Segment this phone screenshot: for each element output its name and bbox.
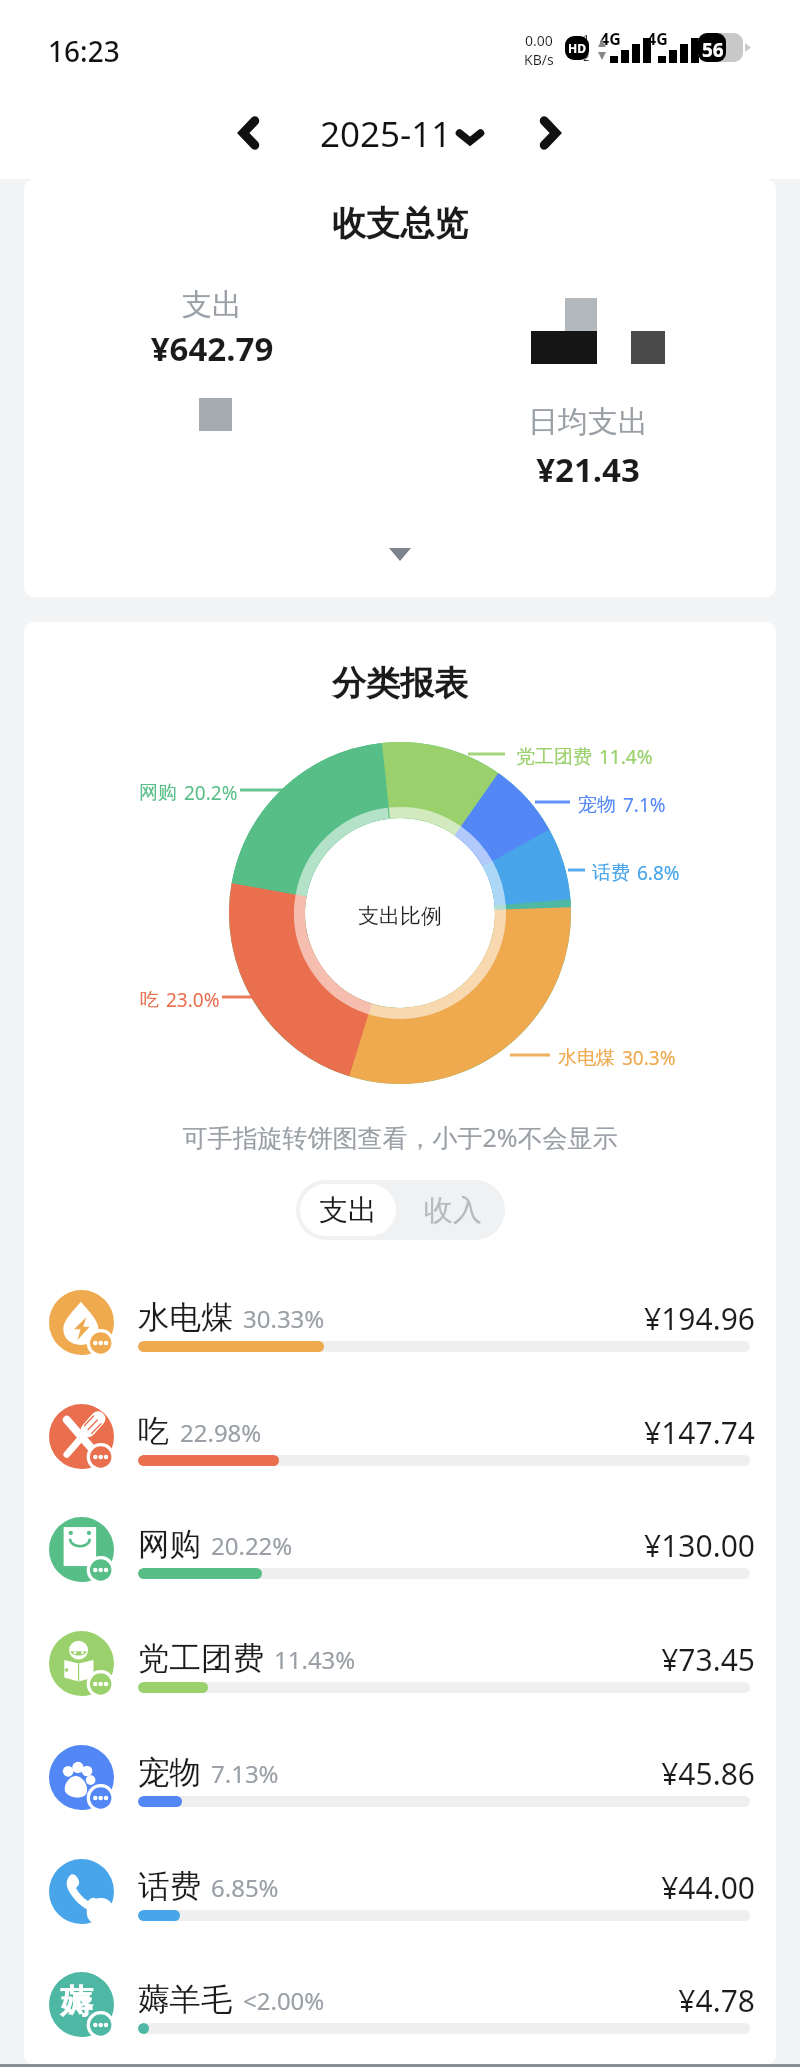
staticText: 支出 — [319, 1192, 377, 1229]
staticText: 11.4% — [599, 744, 653, 770]
staticText: 30.3% — [622, 1045, 676, 1071]
staticText: HD — [568, 40, 586, 56]
button[interactable]: 2025-11 — [320, 106, 482, 162]
button[interactable]: 支出 — [300, 1184, 396, 1236]
staticText: 6.85% — [211, 1871, 279, 1904]
staticText: 6.8% — [637, 860, 680, 886]
staticText: 30.33% — [243, 1302, 325, 1335]
staticText: 水电煤 — [138, 1298, 233, 1338]
staticText: ¥4.78 — [555, 1980, 755, 2021]
staticText: ¥147.74 — [555, 1412, 755, 1453]
staticText: 0.00 — [525, 31, 553, 50]
staticText: 11.43% — [274, 1643, 356, 1676]
staticText: 1 — [583, 31, 590, 46]
staticText: 4G — [647, 28, 668, 50]
button[interactable]: 话费 — [24, 1837, 776, 1947]
staticText: 7.13% — [211, 1757, 279, 1790]
staticText: 56 — [702, 37, 724, 63]
staticText: 吃 — [138, 1412, 170, 1452]
staticText: 23.0% — [166, 987, 220, 1013]
staticText: 日均支出 — [508, 403, 668, 441]
button[interactable]: 薅 — [24, 1950, 776, 2060]
staticText: 2025-11 — [320, 110, 452, 158]
staticText: ¥194.96 — [555, 1298, 755, 1339]
staticText: 20.22% — [211, 1529, 293, 1562]
staticText: 收支总览 — [24, 202, 776, 245]
staticText: 网购 — [139, 781, 177, 805]
staticText: ¥45.86 — [555, 1753, 755, 1794]
staticText: 宠物 — [138, 1753, 201, 1793]
button[interactable]: 水电煤 — [24, 1268, 776, 1378]
button[interactable]: 网购 — [24, 1495, 776, 1605]
staticText: <2.00% — [243, 1984, 325, 2017]
staticText: 薅 — [60, 1981, 93, 2023]
button[interactable]: Next month — [520, 103, 580, 163]
staticText: ¥44.00 — [555, 1867, 755, 1908]
staticText: 党工团费 — [516, 745, 592, 769]
staticText: 收入 — [424, 1192, 482, 1229]
staticText: 22.98% — [180, 1416, 262, 1449]
staticText: 分类报表 — [24, 662, 776, 705]
staticText: 网购 — [138, 1525, 201, 1565]
staticText: 吃 — [140, 988, 159, 1012]
button[interactable]: 收入 — [400, 1180, 505, 1240]
staticText: 7.1% — [623, 792, 666, 818]
button[interactable]: 收支总览 — [24, 179, 776, 597]
staticText: 2 — [583, 49, 590, 64]
staticText: 可手指旋转饼图查看，小于2%不会显示 — [24, 1120, 776, 1154]
staticText: 薅羊毛 — [138, 1980, 233, 2020]
staticText: ¥642.79 — [112, 326, 312, 371]
button[interactable]: 宠物 — [24, 1723, 776, 1833]
staticText: ¥130.00 — [555, 1525, 755, 1566]
staticText: ¥21.43 — [488, 447, 688, 492]
staticText: 党工团费 — [138, 1639, 264, 1679]
button[interactable]: Previous month — [219, 103, 279, 163]
staticText: 话费 — [138, 1867, 201, 1907]
staticText: 支出 — [152, 286, 272, 324]
staticText: 话费 — [592, 861, 630, 885]
staticText: 20.2% — [184, 780, 238, 806]
staticText: 支出比例 — [343, 903, 457, 929]
staticText: 16:23 — [48, 32, 120, 70]
staticText: 4G — [600, 28, 621, 50]
button[interactable]: 党工团费 — [24, 1609, 776, 1719]
staticText: KB/s — [524, 50, 554, 69]
staticText: 宠物 — [578, 793, 616, 817]
staticText: 水电煤 — [558, 1046, 615, 1070]
staticText: ¥73.45 — [555, 1639, 755, 1680]
button[interactable]: 吃 — [24, 1382, 776, 1492]
